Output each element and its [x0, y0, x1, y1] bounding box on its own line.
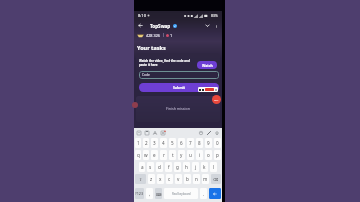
button[interactable]: Symbols: [135, 188, 144, 199]
staticText: 2: [145, 140, 148, 146]
button[interactable]: h: [183, 162, 190, 172]
staticText: Code: [142, 73, 150, 77]
staticText: 83%: [211, 13, 218, 18]
staticText: p: [216, 152, 219, 158]
staticText: z: [150, 176, 153, 182]
button[interactable]: Submit: [139, 83, 219, 92]
staticText: l: [213, 164, 215, 170]
button[interactable]: GIF: [135, 129, 143, 137]
button[interactable]: Code: [139, 71, 219, 79]
staticText: TopSwap: [150, 23, 171, 29]
staticText: i: [199, 152, 201, 158]
button[interactable]: Back: [136, 21, 145, 30]
button[interactable]: 0: [214, 138, 221, 148]
staticText: g: [176, 164, 179, 170]
staticText: k: [203, 164, 206, 170]
button[interactable]: s: [147, 162, 154, 172]
button[interactable]: Recording: [212, 95, 221, 104]
button[interactable]: d: [156, 162, 163, 172]
staticText: e: [153, 152, 156, 158]
staticText: f: [168, 164, 170, 170]
button[interactable]: Stickers: [197, 129, 205, 137]
button[interactable]: .: [200, 188, 207, 199]
button[interactable]: 2: [143, 138, 149, 148]
staticText: s: [149, 164, 152, 170]
button[interactable]: l: [210, 162, 217, 172]
staticText: b: [186, 176, 189, 182]
button[interactable]: t: [169, 150, 176, 160]
button[interactable]: q: [135, 150, 141, 160]
staticText: q: [137, 152, 140, 158]
staticText: Watch the video, find the code and paste…: [139, 59, 190, 67]
staticText: v: [177, 176, 180, 182]
staticText: o: [207, 152, 210, 158]
button[interactable]: 7: [187, 138, 194, 148]
button[interactable]: m: [202, 174, 209, 184]
button[interactable]: c: [166, 174, 173, 184]
button[interactable]: w: [143, 150, 149, 160]
button[interactable]: a: [139, 162, 145, 172]
staticText: n: [195, 176, 198, 182]
staticText: y: [180, 152, 183, 158]
staticText: 8: [198, 140, 201, 146]
button[interactable]: j: [192, 162, 199, 172]
button[interactable]: Watch: [197, 61, 217, 69]
button[interactable]: Space: [164, 188, 198, 199]
button[interactable]: o: [205, 150, 212, 160]
staticText: h: [185, 164, 188, 170]
button[interactable]: u: [187, 150, 194, 160]
button[interactable]: p: [214, 150, 221, 160]
button[interactable]: 3: [151, 138, 158, 148]
staticText: 8:10: [138, 13, 146, 18]
button[interactable]: Settings: [159, 129, 167, 137]
staticText: Your tasks: [137, 44, 166, 51]
button[interactable]: More options: [212, 22, 220, 30]
button[interactable]: y: [178, 150, 185, 160]
staticText: x: [159, 176, 162, 182]
button[interactable]: k: [201, 162, 208, 172]
button[interactable]: z: [148, 174, 155, 184]
staticText: 7: [189, 140, 192, 146]
button[interactable]: Switch keyboard: [155, 188, 162, 199]
staticText: 1: [170, 33, 173, 38]
button[interactable]: n: [193, 174, 200, 184]
button[interactable]: f: [165, 162, 172, 172]
button[interactable]: 8: [196, 138, 203, 148]
button[interactable]: Clipboard: [143, 129, 151, 137]
button[interactable]: Enter: [209, 188, 221, 199]
button[interactable]: b: [184, 174, 191, 184]
button[interactable]: r: [160, 150, 167, 160]
button[interactable]: e: [151, 150, 158, 160]
staticText: ⌫: [213, 177, 219, 181]
button[interactable]: 1: [135, 138, 141, 148]
staticText: ⇧: [139, 177, 143, 181]
button[interactable]: x: [157, 174, 164, 184]
staticText: m: [203, 176, 208, 182]
button[interactable]: 4: [160, 138, 167, 148]
staticText: 0: [216, 140, 219, 146]
button[interactable]: Backspace: [211, 174, 221, 184]
staticText: c: [168, 176, 171, 182]
staticText: 428 326: [146, 33, 161, 38]
staticText: 3: [153, 140, 156, 146]
staticText: t: [172, 152, 174, 158]
button[interactable]: Handwriting: [205, 129, 213, 137]
staticText: ?123: [135, 191, 144, 196]
button[interactable]: More: [213, 129, 221, 137]
button[interactable]: ,: [146, 188, 153, 199]
button[interactable]: Recording controls: [198, 87, 218, 92]
button[interactable]: Expand: [203, 21, 212, 30]
button[interactable]: 5: [169, 138, 176, 148]
button[interactable]: v: [175, 174, 182, 184]
button[interactable]: g: [174, 162, 181, 172]
button[interactable]: Finish mission: [136, 96, 220, 122]
staticText: ,: [149, 191, 151, 197]
staticText: 1: [137, 140, 140, 146]
button[interactable]: 9: [205, 138, 212, 148]
button[interactable]: 6: [178, 138, 185, 148]
button[interactable]: Shift: [135, 174, 146, 184]
button[interactable]: Text formatting: [151, 129, 159, 137]
button[interactable]: i: [196, 150, 203, 160]
staticText: 5: [171, 140, 174, 146]
staticText: j: [195, 164, 197, 170]
